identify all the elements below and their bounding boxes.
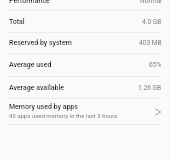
staticText: Memory used by apps (9, 103, 78, 111)
other: Memory used by apps (154, 108, 162, 116)
button[interactable]: Performance (0, 0, 170, 10)
staticText: 65% (149, 61, 162, 69)
staticText: Normal (140, 0, 162, 5)
button[interactable]: Reserved by system (0, 33, 170, 53)
staticText: 403 MB (139, 39, 162, 47)
button[interactable]: Average used (0, 54, 170, 76)
staticText: 45 apps used memory in the last 3 hours (9, 112, 118, 119)
staticText: 1.26 GB (138, 84, 162, 92)
staticText: Total (9, 18, 25, 26)
staticText: Average used (9, 61, 52, 69)
button[interactable]: Average available (0, 77, 170, 98)
button[interactable]: Memory used by apps (0, 99, 170, 124)
staticText: 4.0 GB (142, 18, 162, 26)
staticText: Average available (9, 84, 64, 92)
staticText: Reserved by system (9, 39, 72, 47)
button[interactable]: Total (0, 11, 170, 32)
staticText: Performance (9, 0, 50, 5)
